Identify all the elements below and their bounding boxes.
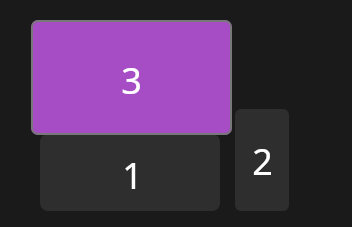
button[interactable]: 2 (235, 109, 289, 211)
button[interactable]: 1 (40, 134, 220, 211)
button[interactable]: 3 (31, 20, 232, 135)
staticText: 1 (122, 151, 143, 200)
staticText: 3 (121, 56, 142, 105)
staticText: 2 (252, 137, 273, 186)
